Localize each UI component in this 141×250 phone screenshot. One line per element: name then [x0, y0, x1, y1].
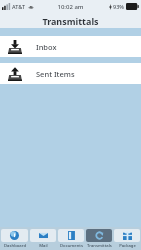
staticText: Mail [39, 243, 48, 249]
staticText: 10:02 am [57, 3, 84, 11]
staticText: Transmittals [42, 15, 99, 27]
button[interactable]: Dashboard [0, 227, 29, 250]
button[interactable]: Package [113, 227, 141, 250]
staticText: Transmittals [87, 243, 112, 249]
staticText: 93% [113, 3, 124, 10]
button[interactable]: Sent Items [0, 63, 141, 84]
staticText: Sent Items [36, 69, 75, 79]
staticText: Dashboard [4, 243, 26, 249]
staticText: Inbox [36, 42, 57, 52]
staticText: Documents [60, 243, 83, 249]
button[interactable]: Mail [29, 227, 57, 250]
button[interactable]: Transmittals [85, 227, 113, 250]
staticText: Package [119, 243, 136, 249]
button[interactable]: Documents [57, 227, 85, 250]
button[interactable]: Inbox [0, 36, 141, 57]
staticText: AT&T [12, 3, 26, 10]
